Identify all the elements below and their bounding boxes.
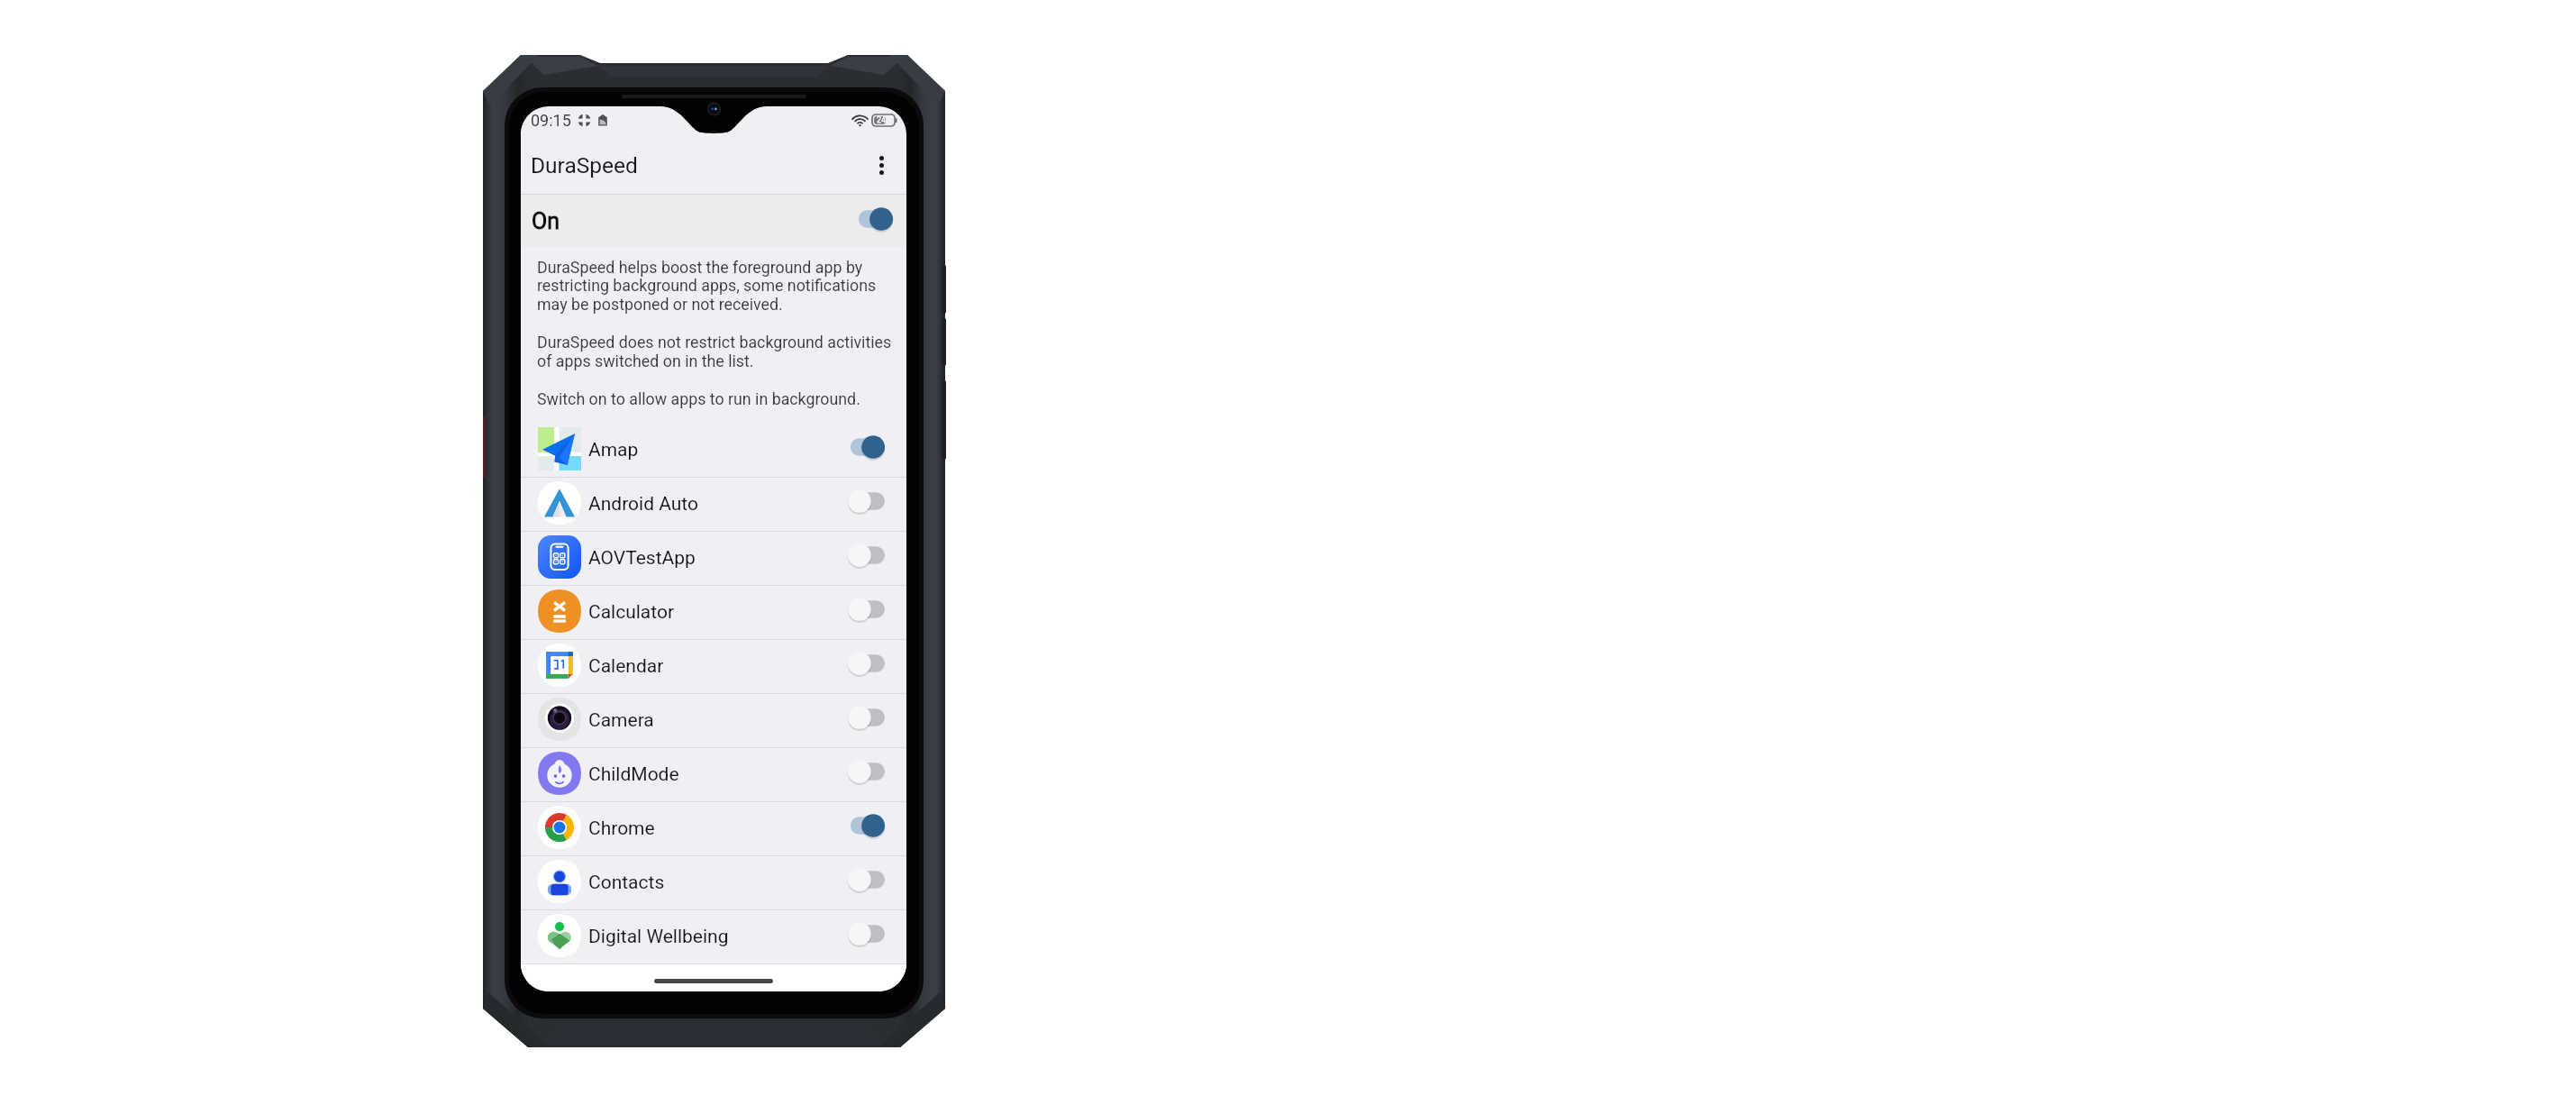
button[interactable]: On bbox=[521, 195, 906, 247]
staticText: Calculator bbox=[588, 601, 675, 624]
button[interactable]: ChildMode bbox=[521, 748, 906, 801]
staticText: Chrome bbox=[588, 817, 655, 840]
button[interactable]: More options bbox=[862, 146, 900, 184]
button[interactable]: Calculator, off bbox=[848, 598, 885, 621]
button[interactable]: Calendar, off bbox=[848, 652, 885, 675]
staticText: Camera bbox=[588, 709, 654, 732]
staticText: ChildMode bbox=[588, 763, 679, 786]
button[interactable]: Android Auto bbox=[521, 478, 906, 531]
button[interactable]: Android Auto, off bbox=[848, 489, 885, 513]
button[interactable]: Chrome bbox=[521, 802, 906, 855]
button[interactable]: Camera, off bbox=[848, 706, 885, 729]
button[interactable]: AOVTestApp bbox=[521, 532, 906, 585]
staticText: Amap bbox=[588, 439, 639, 461]
button[interactable]: Digital Wellbeing bbox=[521, 910, 906, 964]
staticText: On bbox=[532, 208, 560, 234]
staticText: DuraSpeed bbox=[531, 152, 638, 178]
button[interactable]: Calculator bbox=[521, 586, 906, 639]
staticText: Contacts bbox=[588, 872, 665, 894]
button[interactable]: Amap, on bbox=[848, 435, 885, 459]
button[interactable]: Digital Wellbeing, off bbox=[848, 922, 885, 945]
button[interactable]: Chrome, on bbox=[848, 814, 885, 837]
staticText: Android Auto bbox=[588, 493, 698, 516]
button[interactable]: Contacts, off bbox=[848, 868, 885, 891]
button[interactable]: ChildMode, off bbox=[848, 760, 885, 783]
button[interactable]: Amap bbox=[521, 424, 906, 477]
button[interactable]: Camera bbox=[521, 694, 906, 747]
staticText: 24 bbox=[877, 115, 887, 125]
staticText: Calendar bbox=[588, 655, 664, 678]
button[interactable]: Contacts bbox=[521, 856, 906, 909]
button[interactable]: Calendar bbox=[521, 640, 906, 693]
button[interactable]: DuraSpeed, on bbox=[856, 207, 893, 231]
staticText: 09:15 bbox=[531, 111, 571, 130]
button[interactable]: AOVTestApp, off bbox=[848, 543, 885, 567]
staticText: AOVTestApp bbox=[588, 547, 696, 570]
staticText: DuraSpeed helps boost the foreground app… bbox=[537, 258, 900, 409]
staticText: Digital Wellbeing bbox=[588, 926, 729, 948]
